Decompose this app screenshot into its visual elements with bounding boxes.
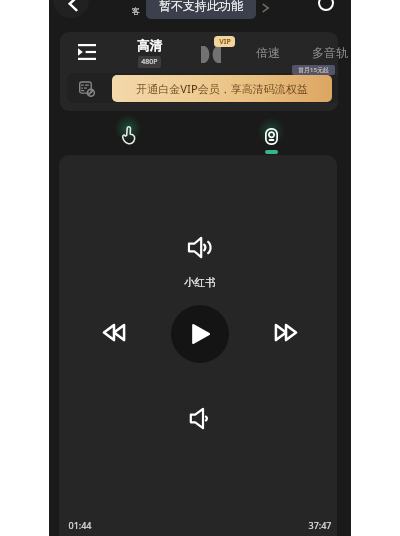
button[interactable]: Volume up	[185, 232, 215, 262]
button[interactable]: Volume down	[185, 403, 215, 433]
staticText: 开通白金VIP会员，享高清码流权益	[136, 81, 308, 96]
staticText: 首月15元起	[298, 66, 329, 74]
staticText: 01:44	[68, 519, 92, 531]
button[interactable]: Rewind	[97, 315, 131, 349]
staticText: 37:47	[308, 519, 332, 531]
button[interactable]: Touchpad	[113, 120, 143, 150]
button[interactable]: Fast forward	[269, 315, 303, 349]
staticText: 暂不支持此功能	[159, 0, 243, 13]
button[interactable]: Playlist	[72, 37, 102, 67]
button[interactable]: 多音轨	[312, 41, 351, 64]
button[interactable]: Remote control	[256, 121, 286, 151]
button[interactable]: Subtitles off	[72, 74, 102, 104]
staticText: 倍速	[256, 45, 280, 60]
staticText: 高清	[137, 38, 162, 54]
button[interactable]: 开通白金VIP会员，享高清码流权益	[112, 75, 332, 102]
button[interactable]: Dolby Audio	[196, 39, 226, 69]
staticText: 小红书	[184, 276, 216, 289]
staticText: VIP	[219, 37, 231, 47]
button[interactable]: Power	[309, 0, 343, 20]
staticText: 多音轨	[312, 45, 348, 60]
button[interactable]: Back	[53, 0, 89, 18]
staticText: 客	[132, 6, 140, 16]
staticText: 480P	[141, 57, 158, 67]
button[interactable]: 倍速	[251, 41, 284, 64]
button[interactable]: 高清	[129, 38, 170, 68]
button[interactable]: Play	[171, 305, 229, 363]
